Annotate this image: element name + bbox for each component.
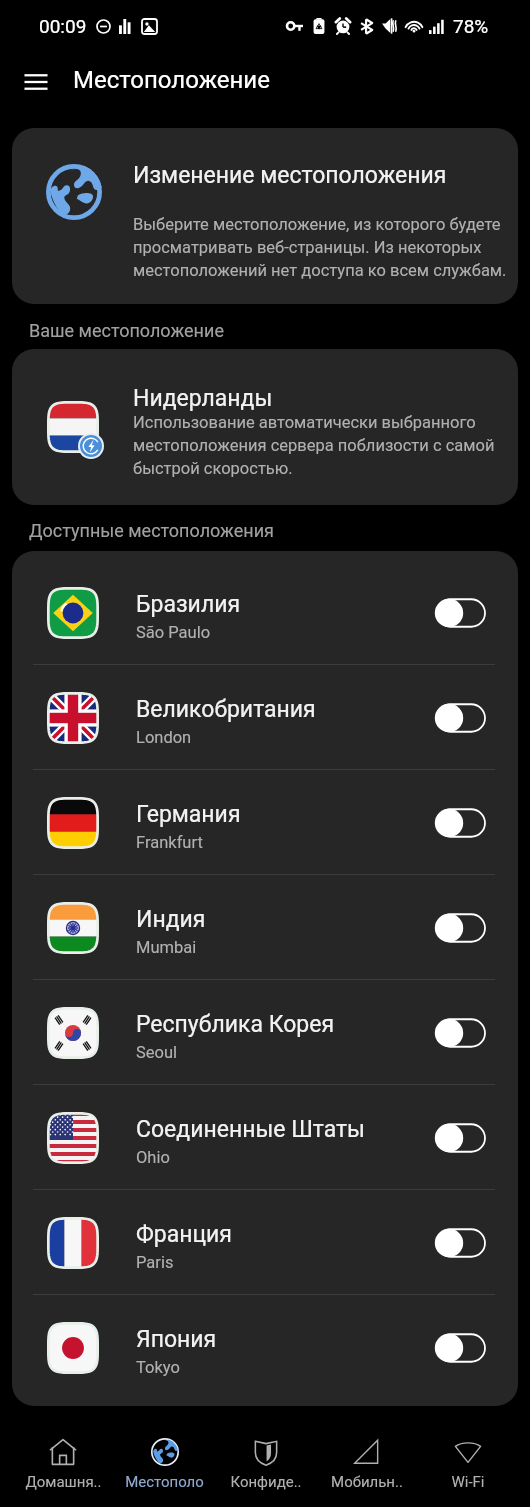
staticText: Местополо [125,1473,204,1491]
staticText: Республика Корея [136,1011,335,1038]
button[interactable]: Соединенные Штаты [12,1085,518,1190]
button[interactable]: Toggle location [435,1226,487,1260]
button[interactable]: Нидерланды [12,349,518,505]
button[interactable]: Франция [12,1190,518,1295]
staticText: Домашня.. [25,1473,102,1491]
button[interactable]: Toggle location [435,596,487,630]
staticText: Paris [136,1253,174,1272]
staticText: Frankfurt [136,833,203,852]
staticText: Ваше местоположение [29,320,224,341]
button[interactable]: Домашня.. [12,1406,114,1507]
staticText: Германия [136,801,241,828]
button[interactable]: Wi-Fi [417,1406,518,1507]
staticText: Выберите местоположение, из которого буд… [133,215,513,280]
staticText: Seoul [136,1043,178,1062]
staticText: Япония [136,1326,217,1353]
button[interactable]: Изменение местоположения [12,128,518,304]
button[interactable]: Республика Корея [12,980,518,1085]
staticText: Использование автоматически выбранного м… [133,413,503,478]
staticText: Бразилия [136,591,241,618]
staticText: Ohio [136,1148,170,1167]
staticText: Конфиде.. [230,1473,302,1491]
staticText: São Paulo [136,623,211,642]
button[interactable]: Toggle location [435,806,487,840]
staticText: Мобильн.. [331,1473,403,1491]
staticText: Mumbai [136,938,197,957]
staticText: 78% [453,15,489,37]
staticText: Изменение местоположения [133,162,447,189]
button[interactable]: Toggle location [435,1121,487,1155]
button[interactable]: Бразилия [12,560,518,665]
button[interactable]: Конфиде.. [215,1406,316,1507]
button[interactable]: Toggle location [435,701,487,735]
button[interactable]: Индия [12,875,518,980]
button[interactable]: Toggle location [435,911,487,945]
staticText: London [136,728,192,747]
staticText: 00:09 [39,15,87,37]
button[interactable]: Япония [12,1295,518,1400]
button[interactable]: Toggle location [435,1016,487,1050]
button[interactable]: Великобритания [12,665,518,770]
staticText: Индия [136,906,206,933]
staticText: Франция [136,1221,232,1248]
button[interactable]: Местополо [114,1406,215,1507]
button[interactable]: Menu [12,58,60,106]
button[interactable]: Мобильн.. [316,1406,417,1507]
staticText: Великобритания [136,696,316,723]
staticText: Tokyo [136,1358,180,1377]
staticText: Wi-Fi [451,1473,485,1491]
staticText: Доступные местоположения [29,520,274,541]
button[interactable]: Toggle location [435,1331,487,1365]
staticText: Нидерланды [133,385,273,412]
staticText: Соединенные Штаты [136,1116,365,1143]
staticText: Местоположение [73,66,270,94]
button[interactable]: Германия [12,770,518,875]
